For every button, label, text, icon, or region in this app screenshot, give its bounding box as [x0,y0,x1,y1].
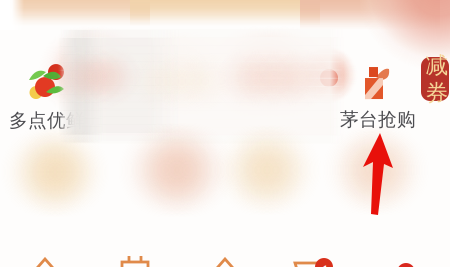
button[interactable]: 减 [421,57,449,101]
staticText: 减 [425,51,448,79]
button[interactable]: 超市 [90,250,180,267]
staticText: 多点优鲜 [9,109,85,132]
button[interactable]: 购物车 [270,250,360,267]
button[interactable]: 多点优鲜 [2,66,92,130]
staticText: 茅台抢购 [340,108,416,131]
staticText: 1 [321,260,329,267]
button[interactable]: 茅台抢购 [333,66,423,130]
button[interactable]: 首页 [0,250,90,267]
button[interactable]: 附近 [180,250,270,267]
button[interactable]: 我的 [360,250,450,267]
staticText: 券 [425,79,448,107]
